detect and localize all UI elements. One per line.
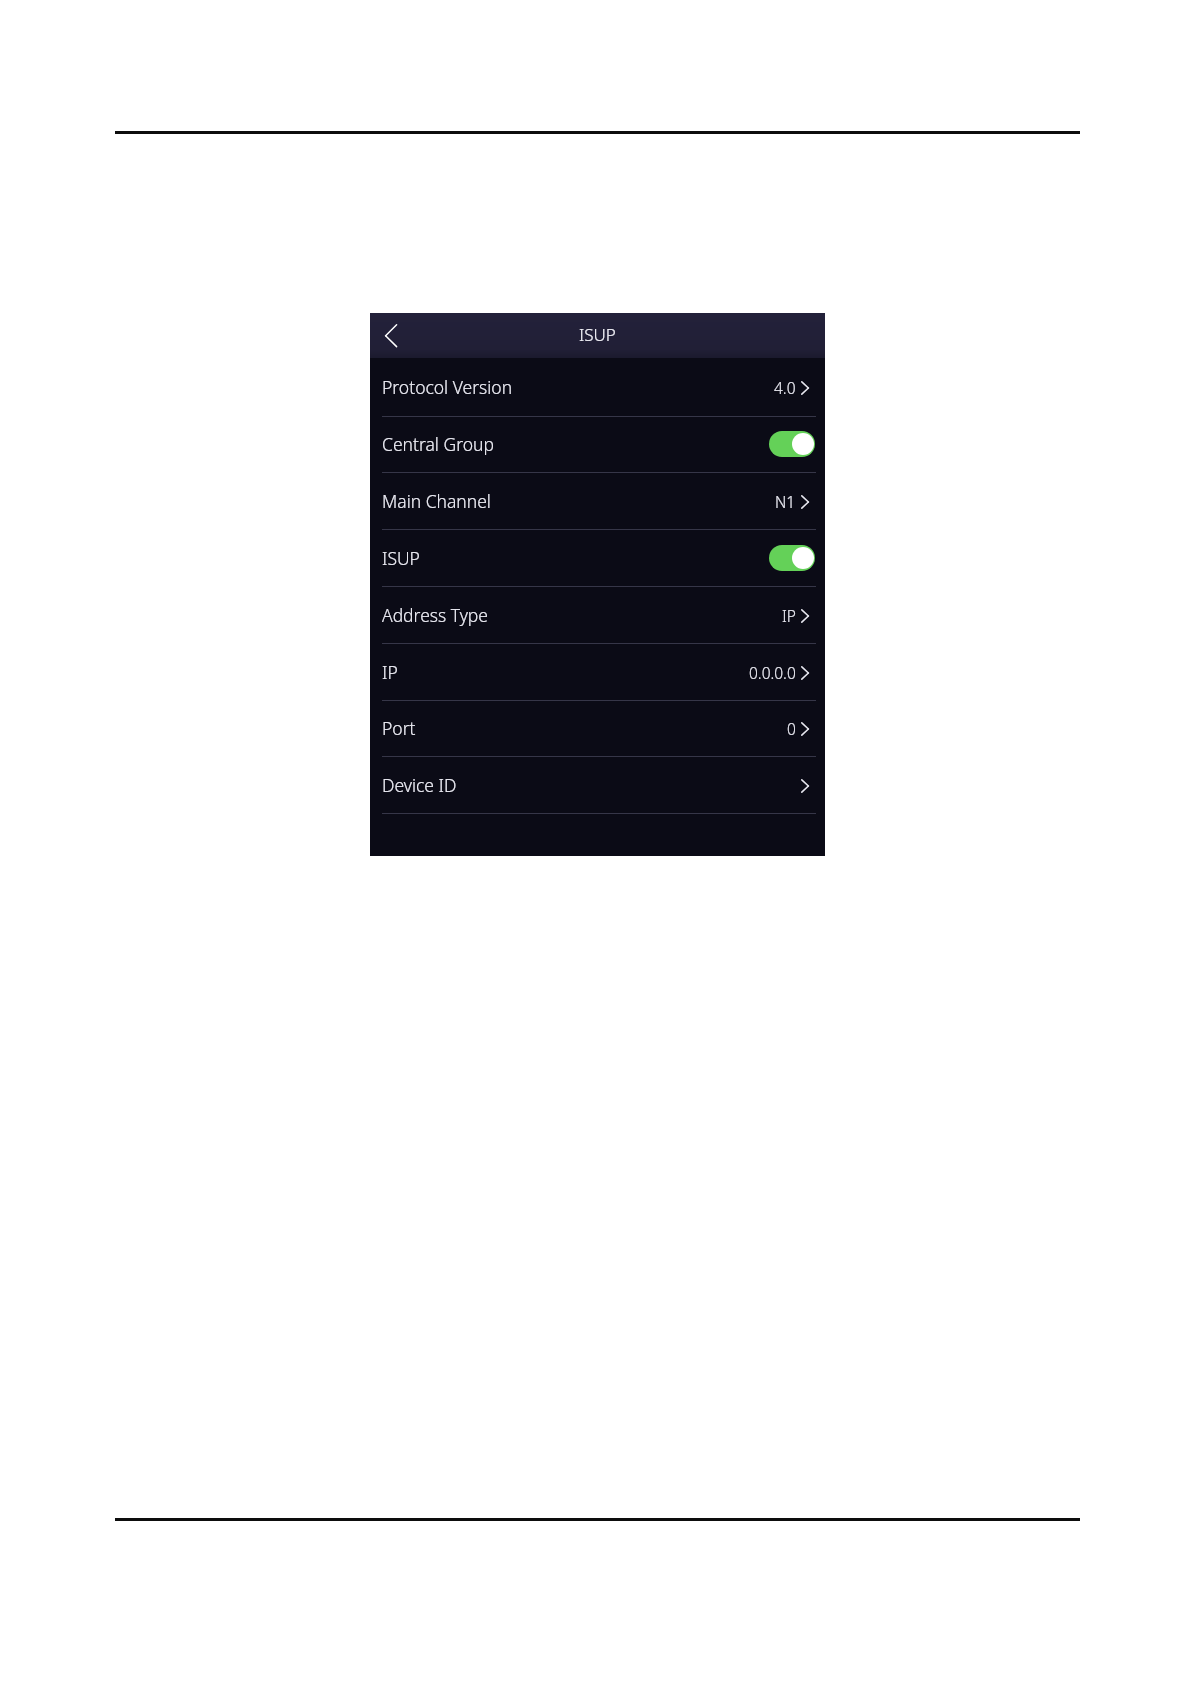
button[interactable]: IP [370,644,825,701]
staticText: Address Type [382,603,489,627]
staticText: Central Group [382,432,494,456]
staticText: Device ID [382,773,457,797]
staticText: Main Channel [382,489,491,513]
staticText: 0 [787,718,796,739]
staticText: 4.0 [774,377,796,398]
button[interactable]: Central Group [370,416,825,473]
staticText: Protocol Version [382,375,513,399]
button[interactable]: ISUP [370,530,825,587]
button[interactable]: Address Type [370,587,825,644]
button[interactable]: Back [370,313,410,358]
staticText: ISUP [382,546,420,570]
button[interactable]: Protocol Version [370,358,825,417]
staticText: ISUP [579,323,616,346]
button[interactable]: Toggle ISUP [769,545,815,571]
button[interactable]: Device ID [370,757,825,814]
button[interactable]: Main Channel [370,473,825,530]
button[interactable]: Toggle Central Group [769,431,815,457]
button[interactable]: Port [370,700,825,757]
staticText: 0.0.0.0 [749,662,796,683]
staticText: IP [782,605,796,626]
staticText: Port [382,716,416,740]
staticText: N1 [775,491,796,512]
staticText: IP [382,660,398,684]
